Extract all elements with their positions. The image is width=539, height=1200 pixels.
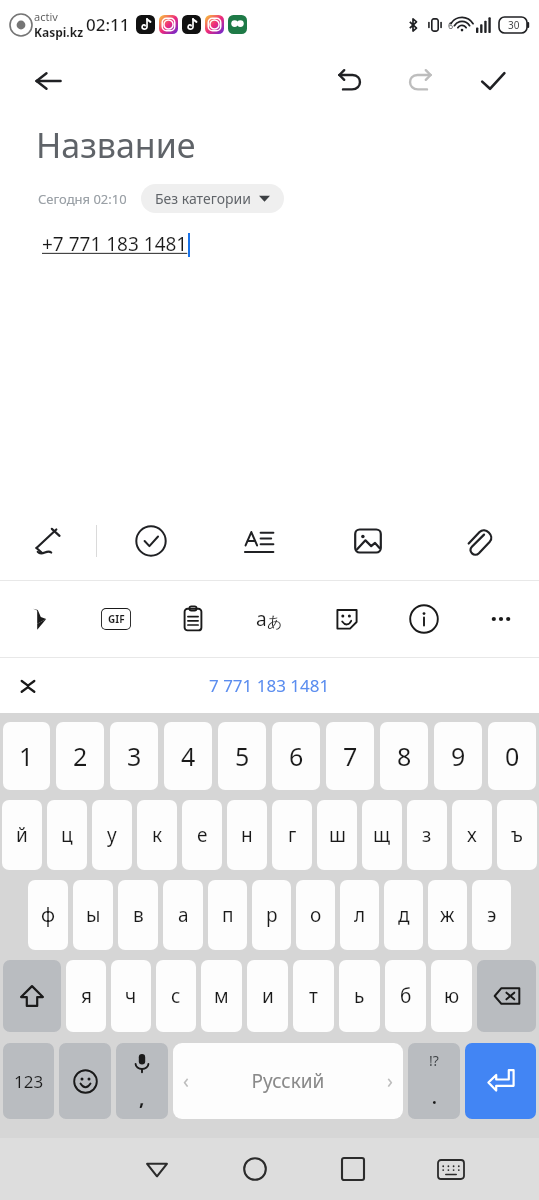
button[interactable]: у — [92, 800, 132, 870]
staticText: あ — [267, 613, 283, 632]
staticText: о — [310, 902, 322, 928]
staticText: GIF — [108, 612, 125, 626]
button[interactable]: н — [227, 800, 267, 870]
button[interactable]: л — [340, 880, 379, 950]
staticText: Kaspi.kz — [34, 24, 84, 40]
staticText: 30 — [508, 18, 520, 32]
staticText: 02:11 — [86, 13, 130, 36]
button[interactable]: Close suggestions — [6, 664, 50, 708]
button[interactable]: Shift — [3, 960, 61, 1032]
button[interactable]: к — [137, 800, 177, 870]
button[interactable]: м — [201, 960, 242, 1032]
button[interactable]: GIF — [77, 581, 154, 657]
button[interactable]: Home — [206, 1138, 304, 1200]
button[interactable]: Attach file — [422, 502, 531, 580]
button[interactable]: ж — [428, 880, 467, 950]
button[interactable]: я — [66, 960, 106, 1032]
button[interactable]: Voice input — [116, 1043, 168, 1119]
button[interactable]: а — [163, 880, 203, 950]
button[interactable]: ‹ — [173, 1043, 403, 1119]
button[interactable]: Back — [26, 59, 70, 103]
button[interactable]: о — [296, 880, 335, 950]
button[interactable]: 4 — [164, 722, 212, 790]
staticText: a — [256, 606, 267, 632]
staticText: 2 — [73, 739, 88, 773]
button[interactable]: 1 — [3, 722, 50, 790]
button[interactable]: ь — [339, 960, 380, 1032]
button[interactable]: Checklist — [97, 502, 205, 580]
button[interactable]: ч — [111, 960, 151, 1032]
staticText: , — [139, 1085, 145, 1111]
button[interactable]: ъ — [497, 800, 537, 870]
button[interactable]: и — [247, 960, 288, 1032]
staticText: у — [107, 822, 117, 848]
button[interactable]: 0 — [488, 722, 536, 790]
button[interactable]: т — [293, 960, 334, 1032]
staticText: п — [222, 902, 234, 928]
button[interactable]: Insert image — [313, 502, 422, 580]
staticText: 7 — [343, 739, 358, 773]
staticText: г — [288, 822, 297, 848]
staticText: л — [354, 902, 366, 928]
staticText: с — [171, 983, 181, 1009]
staticText: 9 — [451, 739, 466, 773]
button[interactable]: ц — [47, 800, 87, 870]
button[interactable]: з — [407, 800, 447, 870]
button[interactable]: э — [472, 880, 511, 950]
button[interactable]: ф — [28, 880, 68, 950]
button[interactable]: Text format — [205, 502, 313, 580]
staticText: 0 — [505, 739, 520, 773]
button[interactable]: б — [385, 960, 426, 1032]
staticText: 1 — [19, 739, 34, 773]
staticText: +7 771 183 1481 — [42, 231, 188, 257]
button[interactable]: Draw — [0, 502, 96, 580]
button[interactable]: 2 — [56, 722, 104, 790]
button[interactable]: 5 — [218, 722, 266, 790]
staticText: 4 — [181, 739, 196, 773]
button[interactable]: Backspace — [477, 960, 536, 1032]
button[interactable]: х — [452, 800, 492, 870]
button[interactable]: в — [118, 880, 158, 950]
button[interactable]: Switch keyboard — [402, 1138, 500, 1200]
button[interactable]: 7 771 183 1481 — [191, 666, 348, 705]
staticText: щ — [373, 822, 391, 848]
button[interactable]: 8 — [380, 722, 428, 790]
button[interactable]: 3 — [110, 722, 158, 790]
button[interactable]: щ — [362, 800, 402, 870]
button[interactable]: ю — [431, 960, 472, 1032]
button[interactable]: ы — [73, 880, 113, 950]
button[interactable]: 9 — [434, 722, 482, 790]
button[interactable]: й — [2, 800, 42, 870]
staticText: д — [398, 902, 410, 928]
staticText: ш — [329, 822, 346, 848]
button[interactable]: д — [384, 880, 423, 950]
button[interactable]: Recent apps — [304, 1138, 402, 1200]
button[interactable]: 123 — [3, 1043, 54, 1119]
button[interactable]: г — [272, 800, 312, 870]
button[interactable]: р — [252, 880, 291, 950]
button[interactable]: с — [156, 960, 196, 1032]
button[interactable]: !? — [408, 1043, 460, 1119]
button[interactable]: п — [208, 880, 247, 950]
button[interactable]: ш — [317, 800, 357, 870]
button[interactable]: Stickers — [308, 581, 385, 657]
button[interactable]: Без категории — [141, 184, 284, 213]
button[interactable]: More — [462, 581, 539, 657]
button[interactable]: Info — [385, 581, 462, 657]
button[interactable]: Hide keyboard — [108, 1138, 206, 1200]
button[interactable]: 7 — [326, 722, 374, 790]
button[interactable]: Done — [467, 55, 519, 107]
button[interactable]: Redo — [395, 55, 447, 107]
button[interactable]: Translate — [231, 581, 308, 657]
button[interactable]: Clipboard — [154, 581, 231, 657]
button[interactable]: Bing — [0, 581, 77, 657]
button[interactable]: е — [182, 800, 222, 870]
staticText: . — [432, 1086, 437, 1109]
button[interactable]: 6 — [272, 722, 320, 790]
staticText: е — [197, 822, 208, 848]
button[interactable]: Emoji — [59, 1043, 111, 1119]
staticText: 6 — [448, 19, 454, 31]
button[interactable]: Enter — [465, 1043, 536, 1119]
button[interactable]: Undo — [323, 55, 375, 107]
staticText: ю — [444, 983, 460, 1009]
